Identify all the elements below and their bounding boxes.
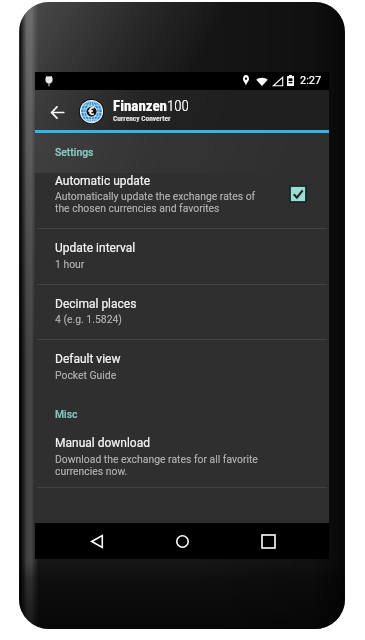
- staticText: Pocket Guide: [55, 369, 117, 381]
- staticText: Settings: [55, 146, 94, 158]
- staticText: Decimal places: [55, 297, 137, 311]
- staticText: Manual download: [55, 436, 150, 450]
- staticText: 2:27: [300, 74, 322, 87]
- staticText: Currency Converter: [113, 114, 171, 123]
- button[interactable]: Automatic update: [290, 186, 306, 202]
- staticText: Automatically update the exchange rates …: [55, 190, 256, 214]
- staticText: €: [88, 105, 95, 118]
- button[interactable]: [35, 339, 329, 400]
- button[interactable]: [35, 229, 329, 283]
- staticText: Default view: [55, 352, 121, 366]
- button[interactable]: Back: [79, 523, 115, 559]
- staticText: Misc: [55, 408, 78, 420]
- button[interactable]: [35, 284, 329, 338]
- staticText: Finanzen100: [113, 97, 189, 115]
- staticText: Download the exchange rates for all favo…: [55, 453, 258, 477]
- button[interactable]: Recent apps: [250, 523, 286, 559]
- staticText: Update interval: [55, 241, 136, 255]
- staticText: Automatic update: [55, 174, 151, 188]
- staticText: 4 (e.g. 1.5824): [55, 313, 122, 325]
- button[interactable]: [35, 425, 329, 486]
- button[interactable]: Navigate up: [39, 90, 75, 130]
- button[interactable]: €: [79, 99, 104, 124]
- button[interactable]: Home: [164, 523, 200, 559]
- button[interactable]: [35, 133, 329, 228]
- staticText: 1 hour: [55, 258, 85, 270]
